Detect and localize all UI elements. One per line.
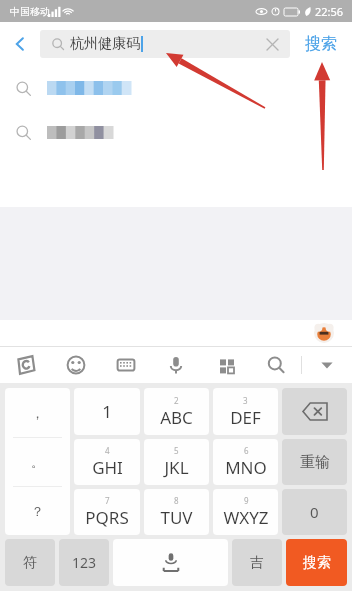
staticText: 6 <box>244 445 249 456</box>
button[interactable]: 。 <box>5 438 70 486</box>
staticText: 123 <box>72 553 97 572</box>
staticText: PQRS <box>85 506 129 529</box>
staticText: 符 <box>23 554 37 572</box>
button[interactable]: 7 <box>74 489 140 535</box>
staticText: 重输 <box>300 453 330 472</box>
button[interactable]: 2 <box>144 388 209 435</box>
button[interactable]: 1 <box>74 388 140 435</box>
staticText: 2 <box>174 395 179 406</box>
staticText: 0 <box>310 502 319 522</box>
button[interactable]: 9 <box>213 489 278 535</box>
staticText: 5 <box>174 445 179 456</box>
button[interactable]: Keyboard <box>101 347 151 383</box>
staticText: 4 <box>105 445 110 456</box>
staticText: 中国移动 <box>10 5 50 18</box>
staticText: GHI <box>92 456 123 479</box>
staticText: 搜索 <box>305 34 337 54</box>
staticText: ABC <box>160 406 193 429</box>
button[interactable] <box>0 110 352 154</box>
staticText: 杭州健康码 <box>70 35 140 53</box>
staticText: 7 <box>105 495 110 506</box>
staticText: TUV <box>160 506 193 529</box>
button[interactable]: Apps <box>201 347 251 383</box>
staticText: 1 <box>102 400 112 423</box>
button[interactable] <box>0 66 352 110</box>
button[interactable]: 123 <box>59 539 109 586</box>
button[interactable]: Search <box>251 347 301 383</box>
button[interactable]: Emoji <box>51 347 101 383</box>
button[interactable]: 符 <box>5 539 55 586</box>
staticText: ， <box>31 405 44 421</box>
button[interactable]: Collapse <box>302 347 352 383</box>
button[interactable]: 杭州健康码 <box>40 30 290 58</box>
button[interactable]: Back <box>0 22 40 66</box>
staticText: 搜索 <box>303 554 331 572</box>
button[interactable]: 5 <box>144 439 209 485</box>
staticText: ？ <box>31 503 44 519</box>
staticText: JKL <box>164 456 189 479</box>
button[interactable]: Voice <box>151 347 201 383</box>
button[interactable]: ？ <box>5 487 70 535</box>
button[interactable]: 3 <box>213 388 278 435</box>
button[interactable]: 0 <box>282 489 347 535</box>
button[interactable]: Delete <box>282 388 347 435</box>
staticText: WXYZ <box>223 506 269 529</box>
staticText: MNO <box>225 456 267 479</box>
staticText: 22:56 <box>315 4 344 19</box>
staticText: 3 <box>243 395 248 406</box>
button[interactable]: Sogou <box>0 347 51 383</box>
staticText: 。 <box>31 454 44 470</box>
button[interactable]: ， <box>5 388 70 437</box>
staticText: 8 <box>174 495 179 506</box>
button[interactable]: 4 <box>74 439 140 485</box>
button[interactable]: 6 <box>213 439 278 485</box>
button[interactable]: 搜索 <box>290 22 352 66</box>
button[interactable]: 重输 <box>282 439 347 485</box>
staticText: 吉 <box>250 554 264 572</box>
button[interactable]: 8 <box>144 489 209 535</box>
button[interactable]: Clear <box>258 30 286 58</box>
staticText: 9 <box>244 495 249 506</box>
button[interactable]: 搜索 <box>286 539 347 586</box>
button[interactable]: Space <box>113 539 228 586</box>
other: Avatar <box>314 323 334 343</box>
button[interactable]: 吉 <box>232 539 282 586</box>
staticText: DEF <box>230 406 261 429</box>
